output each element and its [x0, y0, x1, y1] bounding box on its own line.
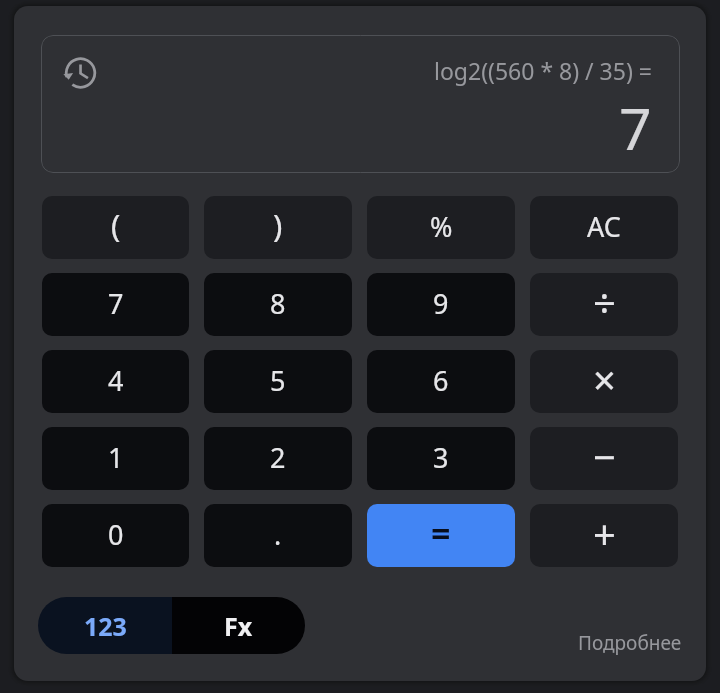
button[interactable]: 6 — [367, 350, 515, 413]
button[interactable]: History — [61, 55, 97, 91]
staticText: 9 — [433, 285, 449, 322]
staticText: % — [430, 208, 453, 245]
staticText: log2((560 * 8) / 35) = — [434, 55, 652, 86]
button[interactable]: AC — [530, 196, 678, 259]
staticText: ÷ — [593, 275, 616, 329]
button[interactable]: 8 — [204, 273, 352, 336]
staticText: Подробнее — [578, 630, 682, 656]
button[interactable]: 1 — [42, 427, 189, 490]
staticText: Fx — [224, 609, 253, 643]
staticText: ) — [273, 204, 283, 246]
button[interactable]: + — [530, 504, 678, 567]
staticText: − — [593, 429, 616, 483]
button[interactable]: ÷ — [530, 273, 678, 336]
button[interactable]: ( — [42, 196, 189, 259]
staticText: 4 — [108, 362, 124, 399]
staticText: 123 — [84, 609, 127, 643]
button[interactable]: 2 — [204, 427, 352, 490]
staticText: . — [274, 516, 282, 553]
button[interactable]: − — [530, 427, 678, 490]
button[interactable]: ) — [204, 196, 352, 259]
staticText: × — [593, 352, 616, 406]
button[interactable]: 4 — [42, 350, 189, 413]
button[interactable]: × — [530, 350, 678, 413]
button[interactable]: Подробнее — [574, 626, 686, 660]
button[interactable]: . — [204, 504, 352, 567]
staticText: 1 — [108, 439, 124, 476]
button[interactable]: = — [367, 504, 515, 567]
staticText: 6 — [433, 362, 449, 399]
staticText: 3 — [433, 439, 449, 476]
staticText: 2 — [270, 439, 286, 476]
button[interactable]: 123 — [38, 597, 172, 654]
staticText: 8 — [270, 285, 286, 322]
staticText: 7 — [619, 89, 652, 167]
button[interactable]: Fx — [172, 597, 305, 654]
staticText: 0 — [108, 516, 124, 553]
button[interactable]: 9 — [367, 273, 515, 336]
button[interactable]: 7 — [42, 273, 189, 336]
button[interactable]: 0 — [42, 504, 189, 567]
staticText: AC — [587, 208, 621, 245]
button[interactable]: % — [367, 196, 515, 259]
staticText: = — [431, 510, 451, 556]
staticText: + — [593, 506, 616, 560]
staticText: 5 — [270, 362, 286, 399]
button[interactable]: 3 — [367, 427, 515, 490]
staticText: ( — [111, 204, 121, 246]
button[interactable]: 5 — [204, 350, 352, 413]
staticText: 7 — [108, 285, 124, 322]
